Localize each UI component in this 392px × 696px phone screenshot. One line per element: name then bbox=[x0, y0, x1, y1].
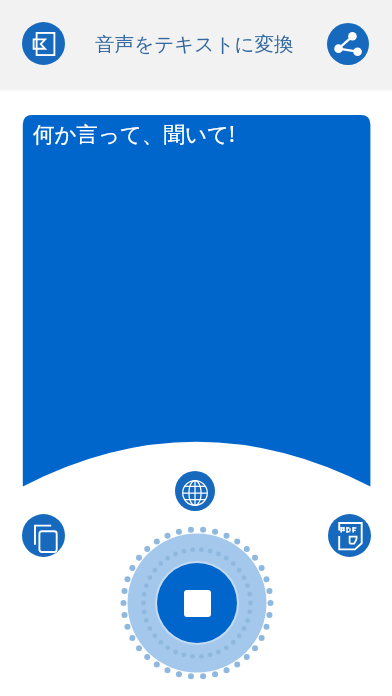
staticText: 音声をテキストに変換 bbox=[95, 32, 294, 57]
button[interactable]: Copy bbox=[22, 514, 65, 557]
button[interactable]: Export PDF bbox=[328, 514, 371, 557]
button[interactable]: Language bbox=[175, 471, 215, 511]
staticText: 何か言って、聞いて! bbox=[33, 119, 235, 148]
button[interactable]: Stop recording bbox=[115, 521, 279, 685]
button[interactable]: Exit bbox=[22, 22, 65, 65]
button[interactable]: Share bbox=[327, 23, 369, 65]
